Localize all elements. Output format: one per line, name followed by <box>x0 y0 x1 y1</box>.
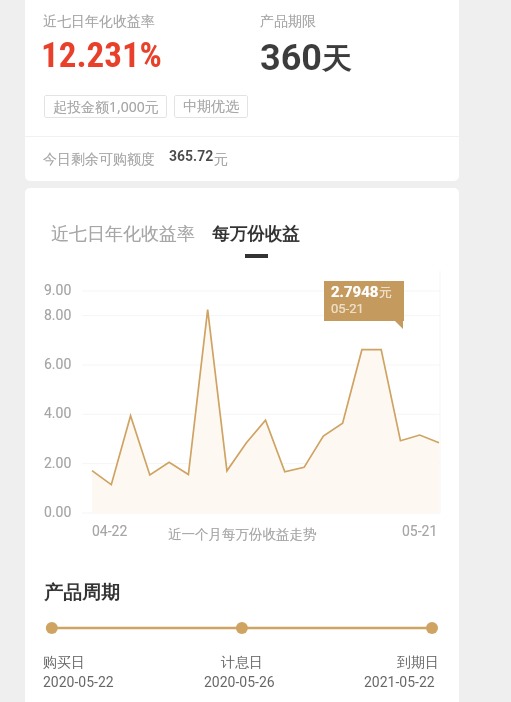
button[interactable]: 中期优选 <box>174 95 248 118</box>
staticText: 2021-05-22 <box>364 674 435 690</box>
staticText: 2.00 <box>44 455 72 471</box>
staticText: 12.231% <box>41 35 162 76</box>
staticText: 购买日 <box>43 654 85 672</box>
staticText: 中期优选 <box>183 98 239 116</box>
staticText: 05-21 <box>402 523 438 539</box>
staticText: 8.00 <box>44 307 72 323</box>
staticText: 起投金额1,000元 <box>53 97 159 116</box>
button[interactable]: 每万份收益 <box>206 216 306 258</box>
staticText: 360 <box>260 37 322 79</box>
staticText: 4.00 <box>44 405 72 421</box>
staticText: 近一个月每万份收益走势 <box>168 526 317 543</box>
staticText: 365.72 <box>169 148 214 164</box>
staticText: 05-21 <box>331 301 364 316</box>
staticText: 产品周期 <box>44 581 120 605</box>
button[interactable]: 起投金额1,000元 <box>44 95 167 118</box>
button[interactable]: 近七日年化收益率 <box>45 216 201 253</box>
staticText: 元 <box>214 151 228 169</box>
staticText: 每万份收益 <box>212 223 300 245</box>
staticText: 元 <box>379 284 392 300</box>
staticText: 2020-05-22 <box>43 674 114 690</box>
staticText: 近七日年化收益率 <box>43 13 155 31</box>
staticText: 2020-05-26 <box>204 674 275 690</box>
staticText: 2.7948 <box>331 283 379 301</box>
staticText: 到期日 <box>397 654 439 672</box>
staticText: 9.00 <box>44 282 72 298</box>
staticText: 近七日年化收益率 <box>51 223 195 246</box>
staticText: 6.00 <box>44 356 72 372</box>
staticText: 04-22 <box>92 523 128 539</box>
staticText: 0.00 <box>44 504 72 520</box>
staticText: 今日剩余可购额度 <box>43 151 155 169</box>
staticText: 天 <box>322 41 351 78</box>
staticText: 计息日 <box>221 654 263 672</box>
staticText: 产品期限 <box>260 13 316 31</box>
